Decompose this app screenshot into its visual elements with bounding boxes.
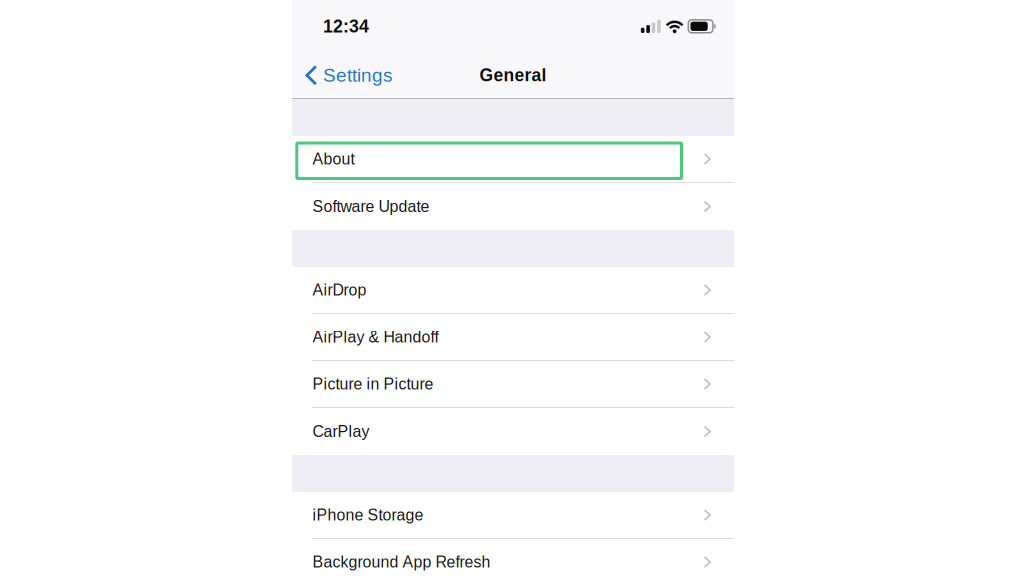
button[interactable]: CarPlay	[292, 408, 734, 455]
staticText: Settings	[323, 65, 392, 86]
staticText: AirDrop	[312, 281, 366, 299]
button[interactable]: Picture in Picture	[292, 361, 734, 408]
button[interactable]: AirDrop	[292, 267, 734, 314]
staticText: Software Update	[312, 198, 429, 215]
staticText: 12:34	[323, 16, 369, 36]
button[interactable]: iPhone Storage	[292, 492, 734, 539]
staticText: Picture in Picture	[312, 375, 433, 393]
staticText: Background App Refresh	[312, 553, 490, 571]
button[interactable]: Background App Refresh	[292, 539, 734, 576]
staticText: iPhone Storage	[312, 506, 423, 524]
staticText: General	[479, 65, 546, 85]
staticText: About	[312, 150, 354, 168]
button[interactable]: AirPlay & Handoff	[292, 314, 734, 361]
button[interactable]: Software Update	[292, 183, 734, 230]
button[interactable]: Settings	[292, 53, 402, 98]
staticText: AirPlay & Handoff	[312, 328, 438, 346]
button[interactable]: About	[292, 136, 734, 183]
staticText: CarPlay	[312, 423, 369, 440]
